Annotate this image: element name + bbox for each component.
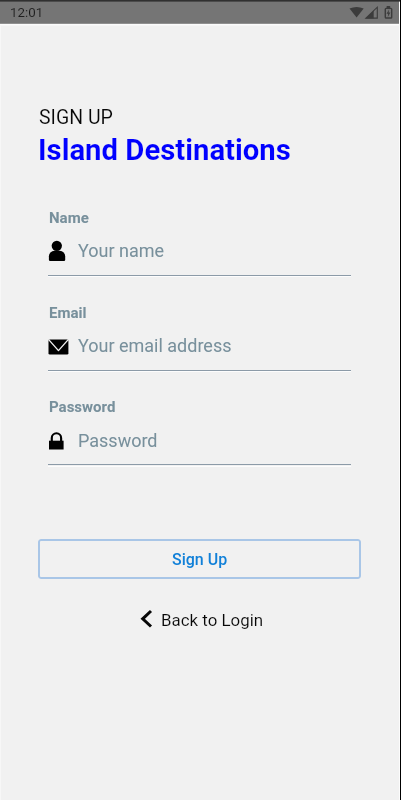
staticText: Back to Login (161, 610, 264, 630)
staticText: Password (49, 398, 116, 416)
staticText: Your email address (78, 335, 232, 356)
staticText: Sign Up (172, 550, 228, 569)
staticText: SIGN UP (39, 106, 113, 129)
staticText: 12:01 (10, 5, 44, 21)
staticText: Island Destinations (38, 133, 291, 167)
staticText: Name (49, 209, 89, 227)
button[interactable]: Sign Up (38, 539, 361, 579)
staticText: Password (78, 430, 158, 451)
button[interactable]: Back to Login (136, 604, 264, 634)
staticText: Email (49, 304, 87, 322)
staticText: Your name (78, 240, 165, 261)
